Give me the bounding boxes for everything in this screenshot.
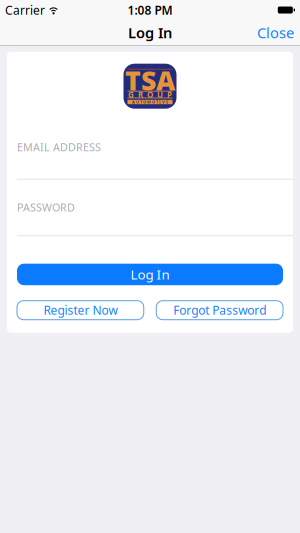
staticText: Log In bbox=[128, 23, 172, 42]
staticText: PASSWORD bbox=[17, 200, 75, 215]
button[interactable]: Forgot Password bbox=[156, 301, 283, 320]
staticText: Log In bbox=[130, 266, 169, 283]
staticText: Close bbox=[257, 23, 294, 42]
button[interactable]: EMAIL ADDRESS bbox=[7, 140, 293, 154]
button[interactable]: Close bbox=[257, 23, 300, 42]
button[interactable]: Log In bbox=[17, 264, 283, 285]
staticText: G R O U P bbox=[128, 89, 172, 100]
staticText: TSA bbox=[125, 62, 175, 98]
button[interactable]: PASSWORD bbox=[7, 200, 293, 215]
staticText: EMAIL ADDRESS bbox=[17, 140, 101, 154]
staticText: Register Now bbox=[43, 302, 117, 318]
staticText: Carrier bbox=[5, 2, 45, 18]
staticText: Forgot Password bbox=[173, 302, 266, 318]
button[interactable]: Register Now bbox=[17, 301, 144, 320]
staticText: 1:08 PM bbox=[127, 2, 172, 18]
staticText: A U T O M O T I V E bbox=[132, 99, 168, 105]
